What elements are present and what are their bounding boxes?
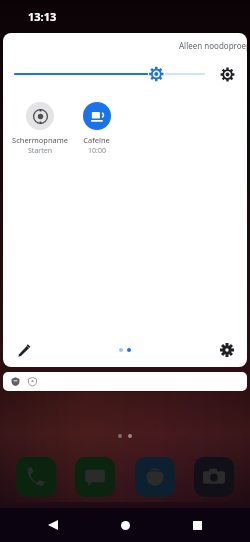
staticText: Starten: [28, 146, 52, 156]
button[interactable]: Brightness: [14, 60, 205, 88]
button[interactable]: Settings: [213, 336, 241, 364]
button[interactable]: App: [75, 457, 115, 497]
staticText: Schermopname: [12, 135, 68, 145]
button[interactable]: Schermopname: [11, 100, 68, 158]
button[interactable]: Back: [40, 512, 66, 538]
button[interactable]: Brightness settings: [211, 58, 243, 90]
button[interactable]: App: [135, 457, 175, 497]
button[interactable]: App: [16, 457, 56, 497]
button[interactable]: Cafeïne: [68, 100, 125, 158]
button[interactable]: Device security info: [3, 372, 247, 391]
button[interactable]: Home: [112, 512, 138, 538]
staticText: 10:00: [88, 146, 106, 156]
button[interactable]: Recent apps: [184, 512, 210, 538]
button[interactable]: Edit tiles: [9, 336, 37, 364]
button[interactable]: App: [194, 457, 234, 497]
staticText: Alleen noodoproepen: [179, 40, 247, 51]
staticText: Cafeïne: [83, 135, 110, 145]
staticText: 13:13: [28, 9, 57, 24]
